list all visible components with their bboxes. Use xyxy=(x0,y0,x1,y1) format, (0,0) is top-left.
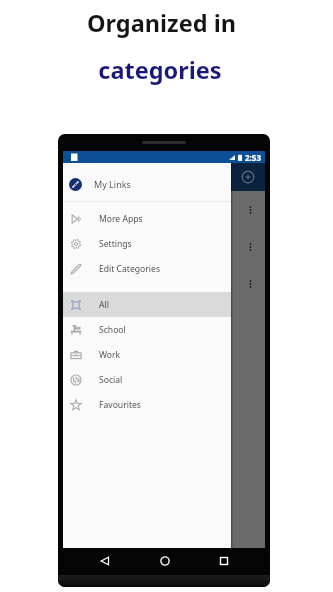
staticText: More Apps xyxy=(99,213,143,225)
button[interactable]: Settings xyxy=(63,231,231,256)
staticText: Edit Categories xyxy=(99,263,161,275)
button[interactable]: Recent apps xyxy=(216,553,231,568)
staticText: Work xyxy=(99,349,121,361)
button[interactable]: Social xyxy=(63,367,231,392)
staticText: 2:53 xyxy=(245,152,261,163)
button[interactable]: Favourites xyxy=(63,392,231,417)
staticText: All xyxy=(99,299,109,311)
button[interactable]: More Apps xyxy=(63,206,231,231)
staticText: My Links xyxy=(94,178,131,190)
button[interactable]: Work xyxy=(63,342,231,367)
staticText: School xyxy=(99,324,126,336)
button[interactable]: Edit Categories xyxy=(63,256,231,281)
button[interactable]: Home xyxy=(157,553,172,568)
button[interactable]: Back xyxy=(97,553,112,568)
staticText: Social xyxy=(99,374,123,386)
button[interactable]: My Links xyxy=(63,171,231,197)
button[interactable]: Add link xyxy=(240,169,256,185)
button[interactable]: All xyxy=(63,292,231,317)
button[interactable]: School xyxy=(63,317,231,342)
staticText: Organized in xyxy=(87,7,236,39)
staticText: Favourites xyxy=(99,399,141,411)
staticText: categories xyxy=(98,54,222,86)
staticText: Settings xyxy=(99,238,132,250)
